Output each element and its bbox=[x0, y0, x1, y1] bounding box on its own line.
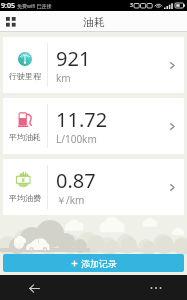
staticText: 11.72 bbox=[56, 106, 108, 133]
staticText: 921 bbox=[56, 45, 91, 72]
staticText: 行驶里程 bbox=[9, 71, 41, 81]
button[interactable]: Menu bbox=[0, 11, 22, 32]
staticText: 添加记录 bbox=[81, 258, 117, 269]
button[interactable]: Recents bbox=[147, 279, 165, 297]
staticText: 0.87 bbox=[56, 167, 96, 194]
staticText: km bbox=[56, 71, 71, 85]
button[interactable]: 添加记录 bbox=[3, 254, 184, 272]
button[interactable]: 平均油费 bbox=[3, 159, 184, 215]
button[interactable]: 平均油耗 bbox=[3, 98, 184, 154]
staticText: L/100km bbox=[56, 132, 97, 146]
staticText: ￥/km bbox=[56, 193, 85, 207]
staticText: 平均油费 bbox=[9, 193, 41, 203]
staticText: 9:05 bbox=[1, 1, 15, 11]
staticText: 油耗 bbox=[83, 15, 105, 29]
staticText: 免费wifi 已连接 bbox=[17, 3, 52, 10]
staticText: 3 bbox=[130, 2, 133, 9]
button[interactable]: 行驶里程 bbox=[3, 37, 184, 93]
staticText: 平均油耗 bbox=[9, 132, 41, 142]
button[interactable]: Back bbox=[25, 279, 43, 297]
